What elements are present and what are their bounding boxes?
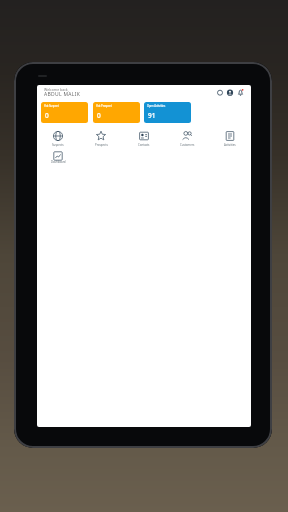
staticText: Hot Prospect [96,104,112,108]
staticText: Customers [180,143,195,147]
button[interactable]: Open Activities [144,102,191,123]
button[interactable] [215,88,247,98]
button[interactable] [52,150,64,162]
staticText: Hot Suspect [44,104,59,108]
staticText: Contacts [138,143,150,147]
button[interactable] [138,130,150,142]
staticText: Open Activities [147,104,166,108]
button[interactable] [224,130,236,142]
staticText: Dashboard [51,160,66,164]
button[interactable]: Hot Prospect [93,102,140,123]
button[interactable] [181,130,193,142]
staticText: ABDUL MALIK [44,91,81,98]
staticText: 0 [97,111,101,120]
staticText: Activities [224,143,236,147]
staticText: Suspects [52,143,64,147]
staticText: Welcome back, [44,87,69,92]
staticText: 91 [148,111,156,120]
button[interactable] [95,130,107,142]
staticText: 0 [45,111,49,120]
button[interactable]: Hot Suspect [41,102,88,123]
button[interactable] [52,130,64,142]
staticText: Prospects [95,143,108,147]
